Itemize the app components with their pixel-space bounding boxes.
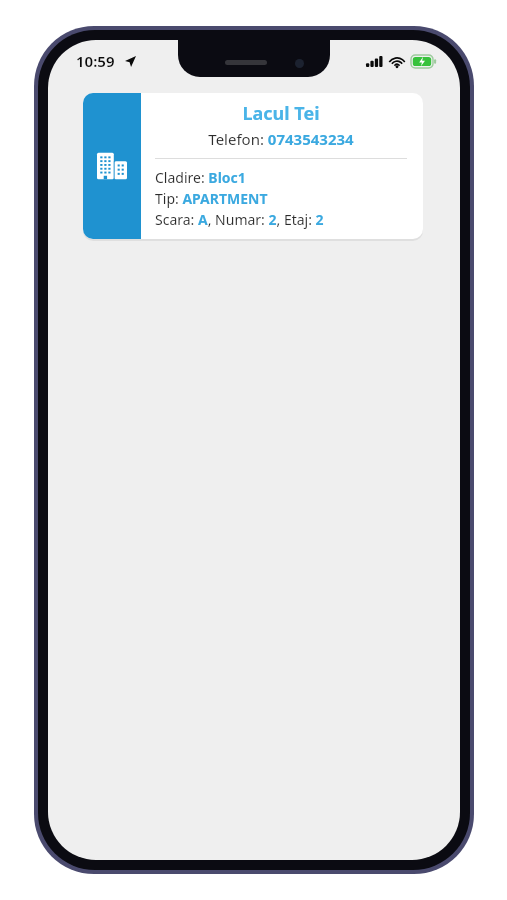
staticText: Scara: A, Numar: 2, Etaj: 2 — [155, 210, 324, 229]
staticText: Telefon: 0743543234 — [155, 129, 407, 149]
staticText: Lacul Tei — [155, 101, 407, 126]
other: Building — [83, 93, 141, 239]
button[interactable]: Building — [83, 93, 423, 239]
staticText: Tip: APARTMENT — [155, 189, 268, 208]
staticText: 10:59 — [76, 51, 115, 71]
staticText: Cladire: Bloc1 — [155, 168, 246, 187]
